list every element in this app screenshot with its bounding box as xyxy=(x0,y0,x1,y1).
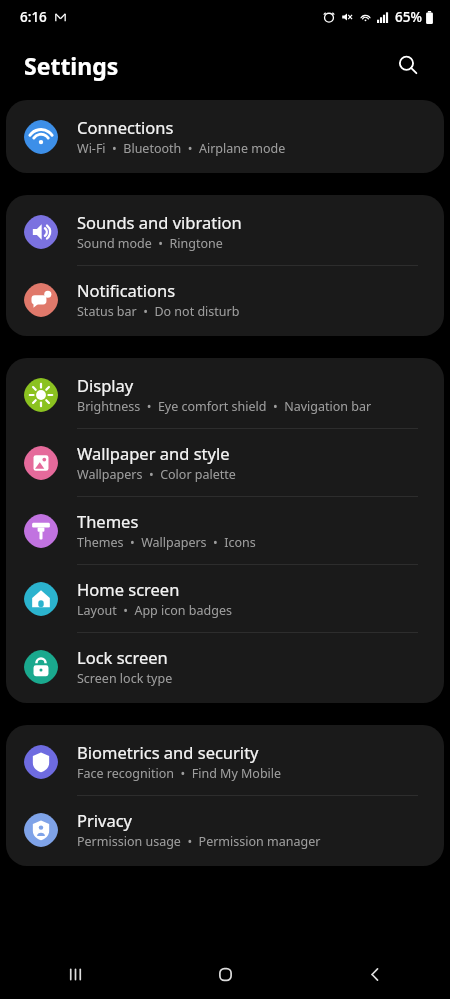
staticText: 6:16 xyxy=(20,8,47,26)
staticText: Wallpaper and style xyxy=(77,442,230,464)
staticText: Settings xyxy=(24,50,119,81)
staticText: Themes xyxy=(77,510,139,532)
staticText: Status bar • Do not disturb xyxy=(77,303,240,320)
staticText: Sounds and vibration xyxy=(77,211,242,233)
staticText: Face recognition • Find My Mobile xyxy=(77,765,282,782)
staticText: Lock screen xyxy=(77,646,168,668)
button[interactable]: Biometrics and security xyxy=(6,728,444,795)
button[interactable]: Lock screen xyxy=(6,633,444,700)
button[interactable]: Search xyxy=(390,47,426,83)
button[interactable]: Notifications xyxy=(6,266,444,333)
staticText: Notifications xyxy=(77,279,176,301)
staticText: Biometrics and security xyxy=(77,741,259,763)
staticText: Sound mode • Ringtone xyxy=(77,235,223,252)
staticText: Layout • App icon badges xyxy=(77,602,232,619)
button[interactable]: Privacy xyxy=(6,796,444,863)
button[interactable]: Connections xyxy=(6,103,444,170)
button[interactable]: Home screen xyxy=(6,565,444,632)
staticText: Permission usage • Permission manager xyxy=(77,833,321,850)
staticText: Privacy xyxy=(77,809,133,831)
button[interactable]: Home xyxy=(150,950,300,999)
button[interactable]: Sounds and vibration xyxy=(6,198,444,265)
button[interactable]: Recents xyxy=(0,950,150,999)
button[interactable]: Wallpaper and style xyxy=(6,429,444,496)
button[interactable]: Display xyxy=(6,361,444,428)
staticText: Wallpapers • Color palette xyxy=(77,466,236,483)
staticText: Wi-Fi • Bluetooth • Airplane mode xyxy=(77,140,286,157)
staticText: Brightness • Eye comfort shield • Naviga… xyxy=(77,398,372,415)
staticText: Home screen xyxy=(77,578,180,600)
staticText: Screen lock type xyxy=(77,670,173,687)
staticText: Connections xyxy=(77,116,174,138)
button[interactable]: Themes xyxy=(6,497,444,564)
button[interactable]: Back xyxy=(300,950,450,999)
staticText: Display xyxy=(77,374,134,396)
staticText: 65% xyxy=(395,8,422,26)
staticText: Themes • Wallpapers • Icons xyxy=(77,534,256,551)
